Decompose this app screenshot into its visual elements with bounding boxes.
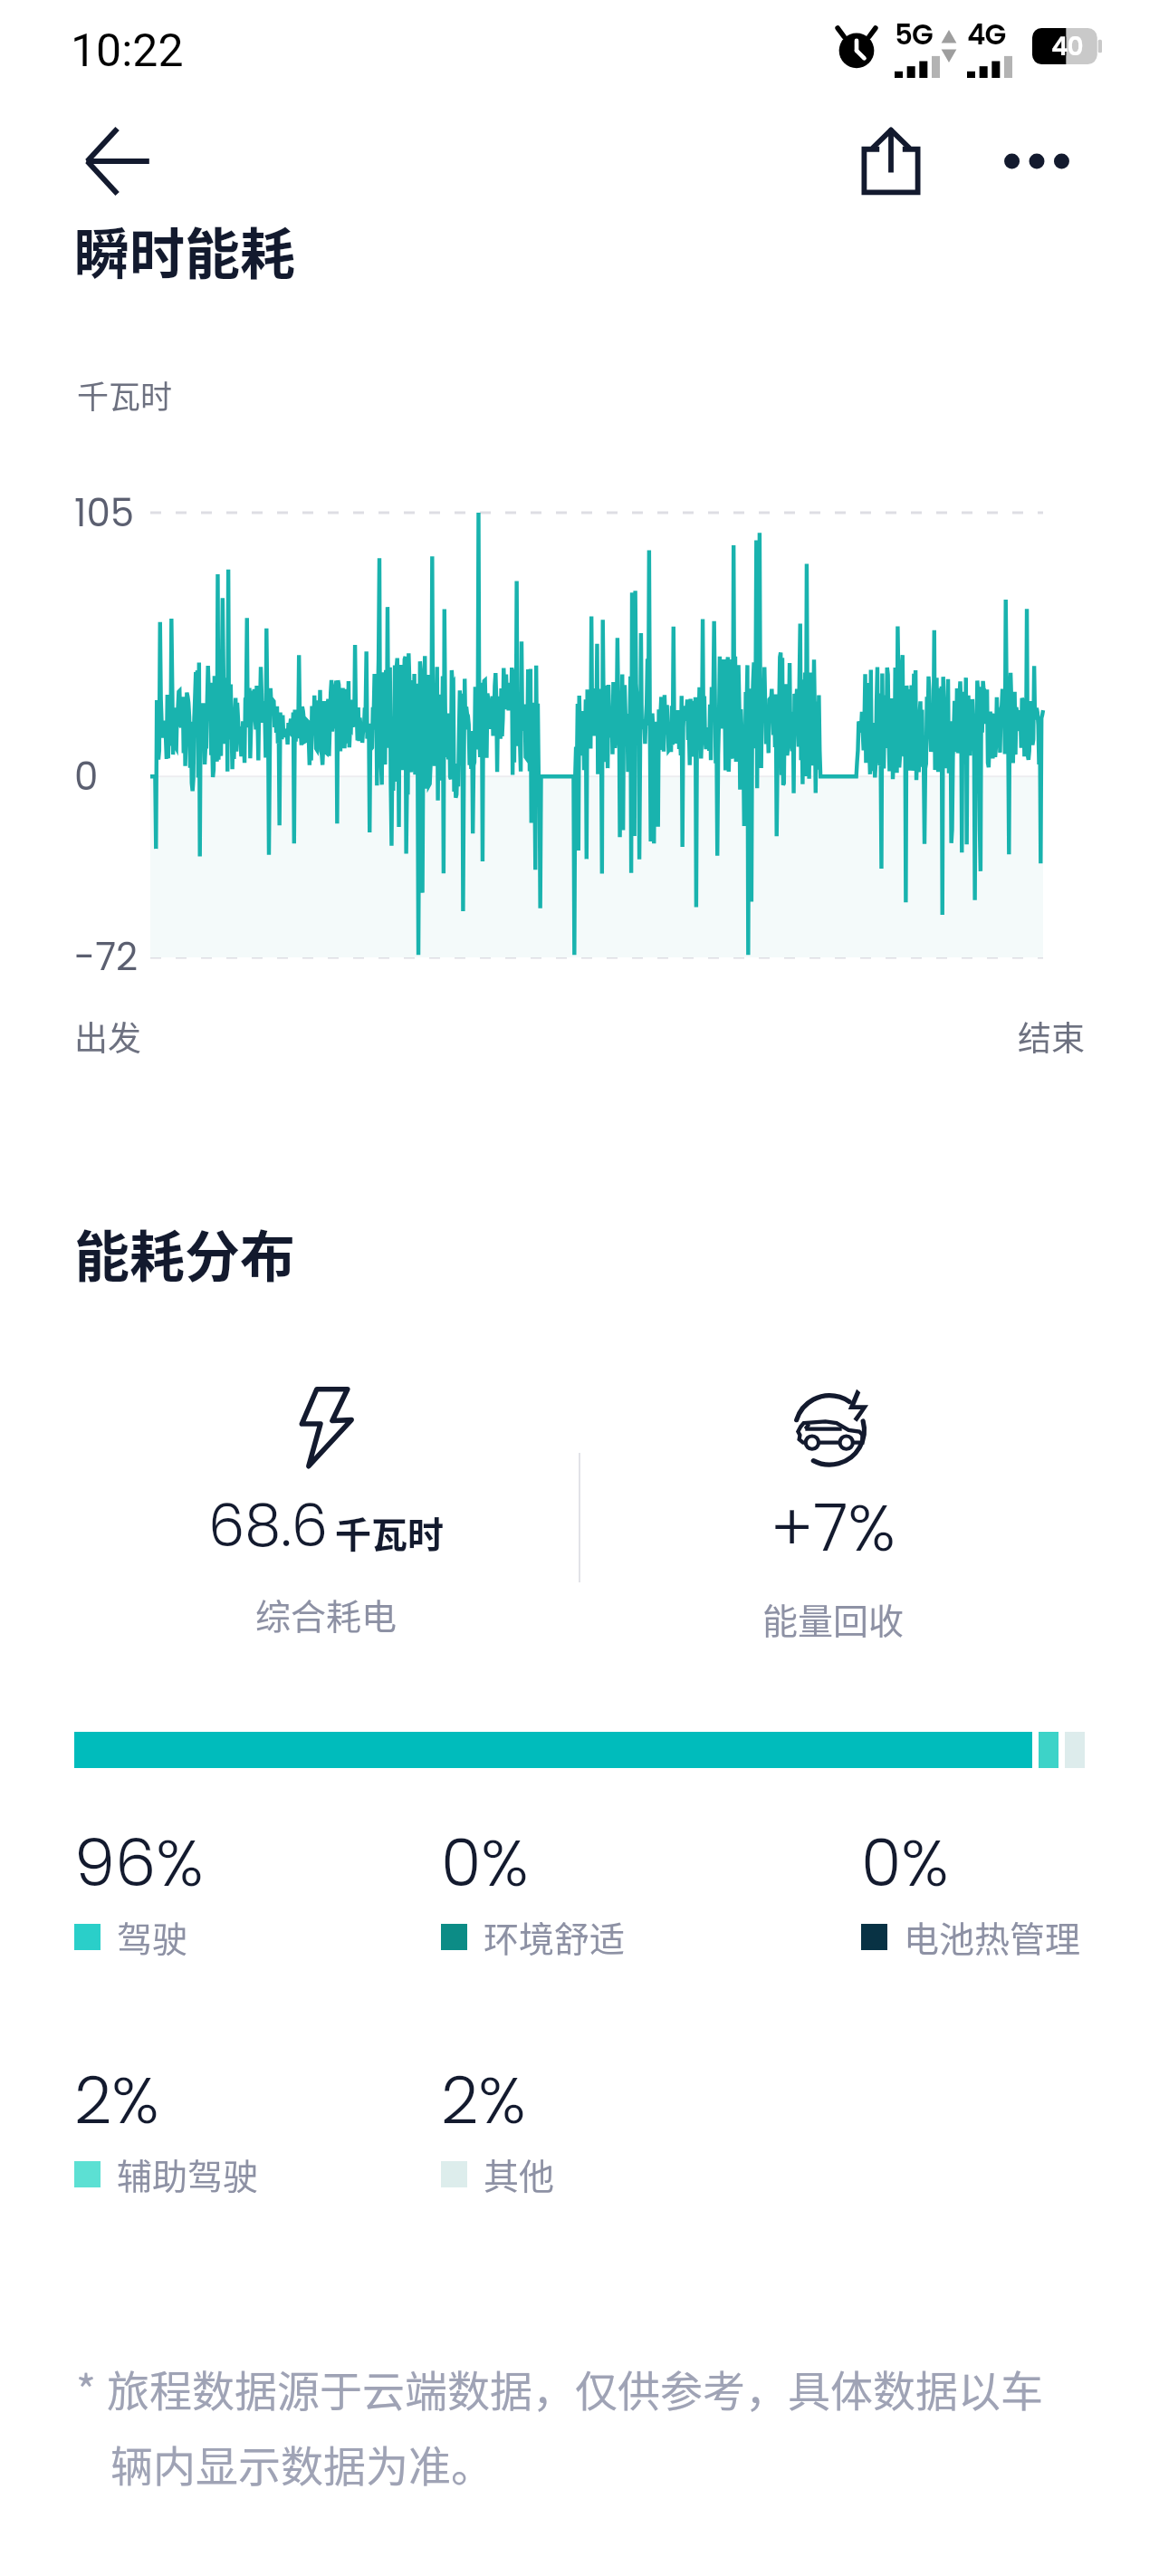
staticText: 能量回收 xyxy=(762,1593,905,1644)
staticText: 瞬时能耗 xyxy=(74,210,296,290)
staticText: 其他 xyxy=(484,2148,555,2199)
button[interactable]: Back xyxy=(80,125,152,197)
staticText: 0% xyxy=(861,1817,949,1908)
button[interactable]: Share xyxy=(855,126,927,197)
staticText: -72 xyxy=(74,930,139,984)
staticText: 综合耗电 xyxy=(255,1589,398,1639)
staticText: 5G xyxy=(895,14,933,53)
staticText: 结束 xyxy=(1018,1012,1085,1061)
staticText: 辆内显示数据为准。 xyxy=(110,2432,493,2494)
staticText: 2% xyxy=(441,2054,526,2146)
staticText: 电池热管理 xyxy=(904,1911,1081,1962)
staticText: 68.6 xyxy=(208,1485,329,1567)
staticText: 环境舒适 xyxy=(484,1911,626,1962)
staticText: 105 xyxy=(74,486,135,540)
staticText: 辅助驾驶 xyxy=(117,2148,259,2199)
staticText: 能耗分布 xyxy=(74,1213,296,1293)
staticText: 96% xyxy=(74,1817,204,1908)
staticText: 0 xyxy=(74,750,99,803)
staticText: 驾驶 xyxy=(117,1911,188,1962)
staticText: +7% xyxy=(771,1482,896,1573)
staticText: 旅程数据源于云端数据，仅供参考，具体数据以车 xyxy=(107,2357,1043,2418)
staticText: 4G xyxy=(967,14,1006,53)
staticText: 出发 xyxy=(74,1012,141,1061)
staticText: 千瓦时 xyxy=(335,1506,444,1559)
staticText: 千瓦时 xyxy=(77,371,173,418)
button[interactable]: More options xyxy=(996,128,1078,195)
staticText: * xyxy=(76,2357,96,2418)
staticText: 10:22 xyxy=(71,24,184,78)
staticText: 2% xyxy=(74,2054,159,2146)
staticText: 40 xyxy=(1051,29,1083,64)
staticText: 0% xyxy=(441,1817,529,1908)
